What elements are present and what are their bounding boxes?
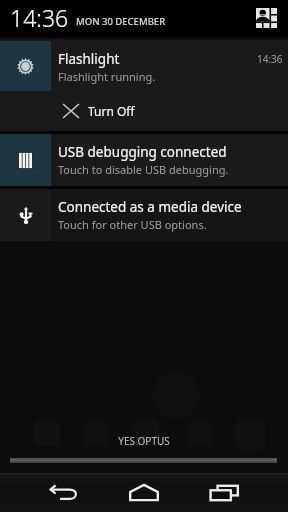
- button[interactable]: Home: [104, 473, 184, 512]
- staticText: 14:36: [10, 2, 69, 33]
- staticText: 14:36: [257, 52, 283, 66]
- staticText: Turn Off: [88, 103, 135, 119]
- staticText: YES OPTUS: [0, 434, 288, 448]
- button[interactable]: Back: [24, 473, 104, 512]
- button[interactable]: Quick settings: [251, 0, 282, 36]
- button[interactable]: Flashlight: [0, 41, 288, 91]
- staticText: Flashlight running.: [58, 69, 156, 84]
- button[interactable]: Recent apps: [184, 473, 264, 512]
- staticText: USB debugging connected: [58, 143, 227, 161]
- staticText: Flashlight: [58, 50, 120, 68]
- staticText: Touch for other USB options.: [58, 217, 207, 232]
- button[interactable]: Close notification shade: [0, 458, 288, 473]
- staticText: Touch to disable USB debugging.: [58, 162, 229, 177]
- staticText: MON 30 DECEMBER: [76, 15, 166, 28]
- button[interactable]: Connected as a media device: [0, 189, 288, 241]
- button[interactable]: USB debugging connected: [0, 134, 288, 186]
- staticText: Connected as a media device: [58, 198, 242, 216]
- button[interactable]: Turn Off: [0, 91, 288, 131]
